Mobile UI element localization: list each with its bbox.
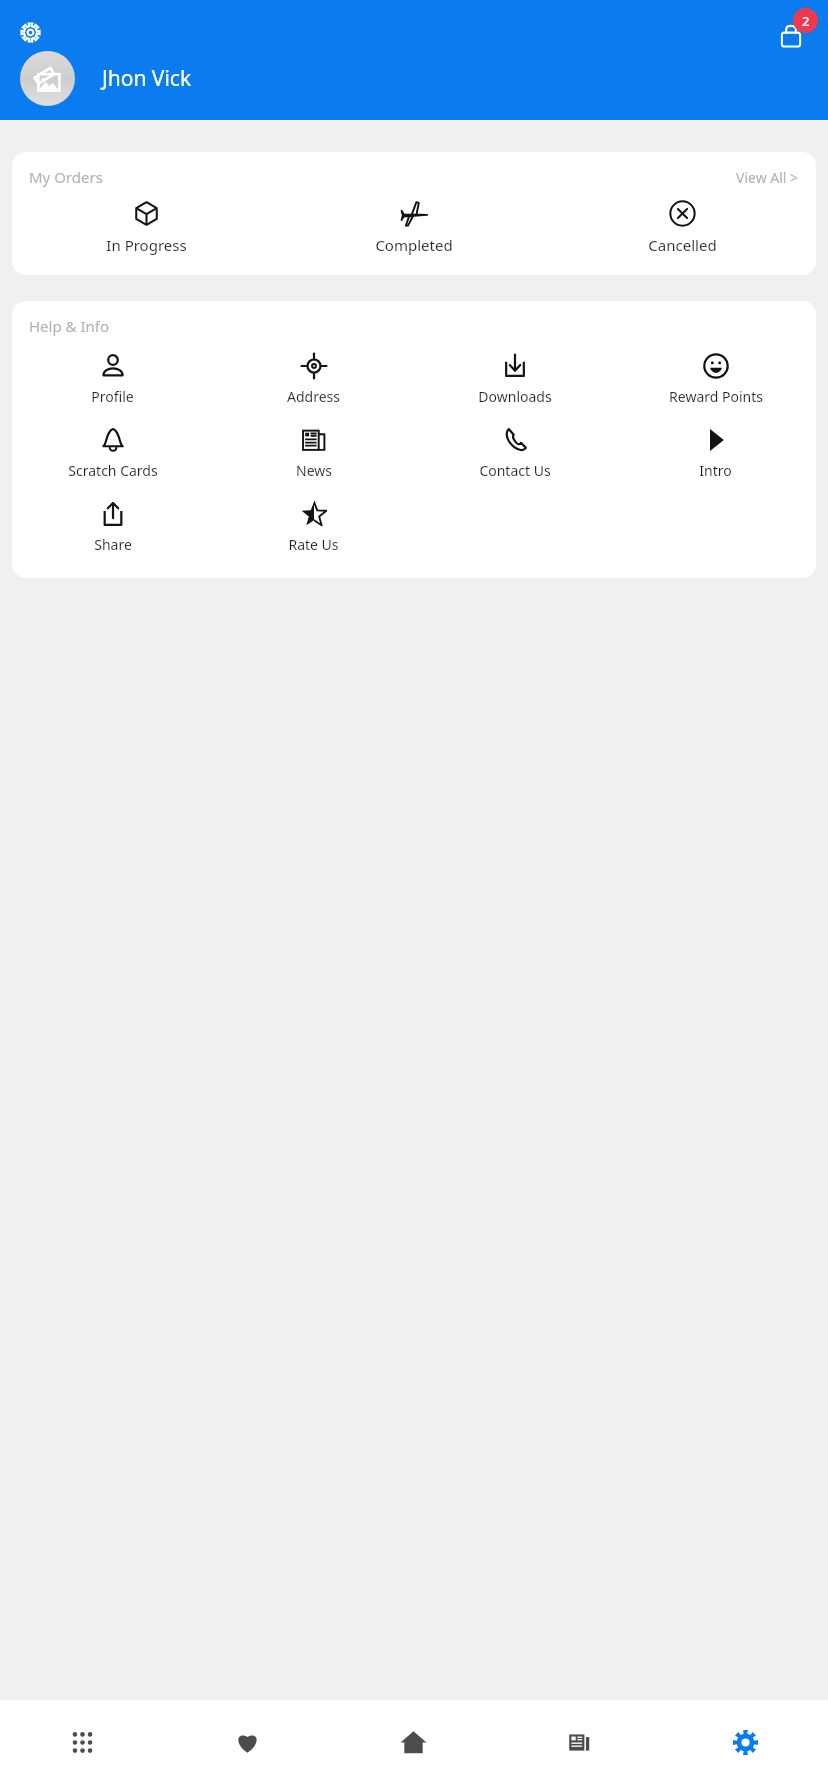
staticText: Downloads bbox=[478, 387, 552, 406]
staticText: Contact Us bbox=[479, 461, 551, 480]
staticText: Profile bbox=[91, 387, 134, 406]
button[interactable]: In Progress bbox=[12, 198, 280, 257]
staticText: Scratch Cards bbox=[68, 461, 158, 480]
button[interactable]: Address bbox=[213, 351, 414, 408]
button[interactable]: Settings bbox=[12, 14, 48, 50]
button[interactable]: Profile photo bbox=[20, 51, 75, 106]
staticText: Help & Info bbox=[29, 316, 110, 336]
button[interactable]: Downloads bbox=[414, 351, 615, 408]
button[interactable]: View All > bbox=[736, 168, 799, 187]
button[interactable]: Completed bbox=[280, 198, 548, 257]
button[interactable]: Share bbox=[12, 499, 213, 556]
button[interactable]: News bbox=[213, 425, 414, 482]
button[interactable]: Cancelled bbox=[548, 198, 816, 257]
button[interactable]: Contact Us bbox=[414, 425, 615, 482]
button[interactable]: Rate Us bbox=[213, 499, 414, 556]
button[interactable]: Profile bbox=[12, 351, 213, 408]
staticText: Intro bbox=[699, 461, 732, 480]
button[interactable]: Cart bbox=[770, 8, 818, 56]
button[interactable]: News bbox=[496, 1718, 662, 1766]
staticText: Rate Us bbox=[288, 535, 339, 554]
staticText: 2 bbox=[802, 12, 810, 30]
staticText: In Progress bbox=[106, 235, 187, 255]
button[interactable]: Reward Points bbox=[615, 351, 816, 408]
staticText: Share bbox=[94, 535, 132, 554]
staticText: Completed bbox=[375, 235, 453, 255]
staticText: Address bbox=[287, 387, 340, 406]
staticText: News bbox=[296, 461, 332, 480]
button[interactable]: Favorites bbox=[165, 1718, 330, 1766]
staticText: My Orders bbox=[29, 167, 103, 187]
button[interactable]: Apps bbox=[0, 1718, 165, 1766]
staticText: Reward Points bbox=[669, 387, 763, 406]
staticText: View All > bbox=[736, 168, 799, 187]
button[interactable]: Intro bbox=[615, 425, 816, 482]
button[interactable]: Scratch Cards bbox=[12, 425, 213, 482]
button[interactable]: Settings bbox=[662, 1718, 828, 1766]
button[interactable]: Home bbox=[330, 1718, 496, 1766]
staticText: Jhon Vick bbox=[102, 64, 192, 93]
staticText: Cancelled bbox=[648, 235, 717, 255]
